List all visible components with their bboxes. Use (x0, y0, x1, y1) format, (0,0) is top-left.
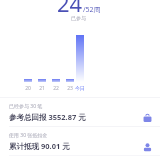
staticText: /52周 (83, 5, 101, 15)
button[interactable]: 使用 30 张抵扣金 (0, 127, 160, 155)
staticText: 23 (62, 85, 78, 92)
staticText: 今日 (72, 85, 88, 91)
staticText: 累计抵现 90.01 元 (9, 141, 70, 151)
staticText: 参考总回报 3552.87 元 (9, 112, 86, 122)
staticText: 24 (57, 0, 83, 18)
other: Total return detail (143, 114, 152, 123)
staticText: 使用 30 张抵扣金 (9, 132, 48, 139)
staticText: 22 (48, 85, 64, 92)
other: Cash back detail (143, 143, 152, 152)
staticText: 21 (34, 85, 50, 92)
button[interactable]: 已经参与 30 笔 (0, 98, 160, 126)
staticText: 已参与 (71, 15, 86, 21)
staticText: 20 (20, 85, 36, 92)
staticText: 已经参与 30 笔 (9, 103, 43, 110)
